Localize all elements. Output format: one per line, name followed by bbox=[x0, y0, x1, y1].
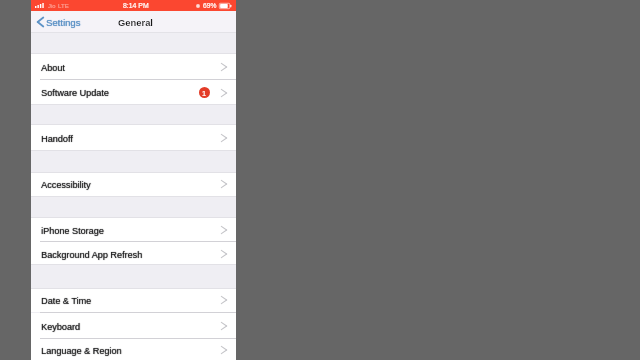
button[interactable]: Settings bbox=[31, 11, 85, 33]
button[interactable]: Date & Time bbox=[31, 288, 236, 312]
staticText: iPhone Storage bbox=[41, 226, 104, 236]
button[interactable]: Background App Refresh bbox=[31, 242, 236, 265]
staticText: LTE bbox=[58, 2, 69, 9]
staticText: Settings bbox=[46, 17, 81, 28]
staticText: Jio bbox=[48, 3, 56, 9]
button[interactable]: Software Update bbox=[31, 79, 236, 105]
staticText: Accessibility bbox=[41, 180, 91, 190]
staticText: General bbox=[118, 17, 153, 28]
button[interactable]: Accessibility bbox=[31, 172, 236, 196]
button[interactable]: Language & Region bbox=[31, 338, 236, 360]
button[interactable]: About bbox=[31, 53, 236, 80]
staticText: About bbox=[41, 63, 65, 73]
button[interactable]: iPhone Storage bbox=[31, 217, 236, 242]
staticText: Keyboard bbox=[41, 322, 80, 332]
staticText: Language & Region bbox=[41, 346, 122, 356]
staticText: Software Update bbox=[41, 88, 109, 98]
staticText: Date & Time bbox=[41, 296, 92, 306]
button[interactable]: Keyboard bbox=[31, 313, 236, 339]
staticText: 69% bbox=[203, 2, 217, 9]
staticText: 1 bbox=[202, 89, 207, 97]
staticText: Background App Refresh bbox=[41, 250, 143, 260]
staticText: 8:14 PM bbox=[123, 2, 149, 10]
staticText: Handoff bbox=[41, 134, 73, 144]
button[interactable]: Handoff bbox=[31, 124, 236, 151]
